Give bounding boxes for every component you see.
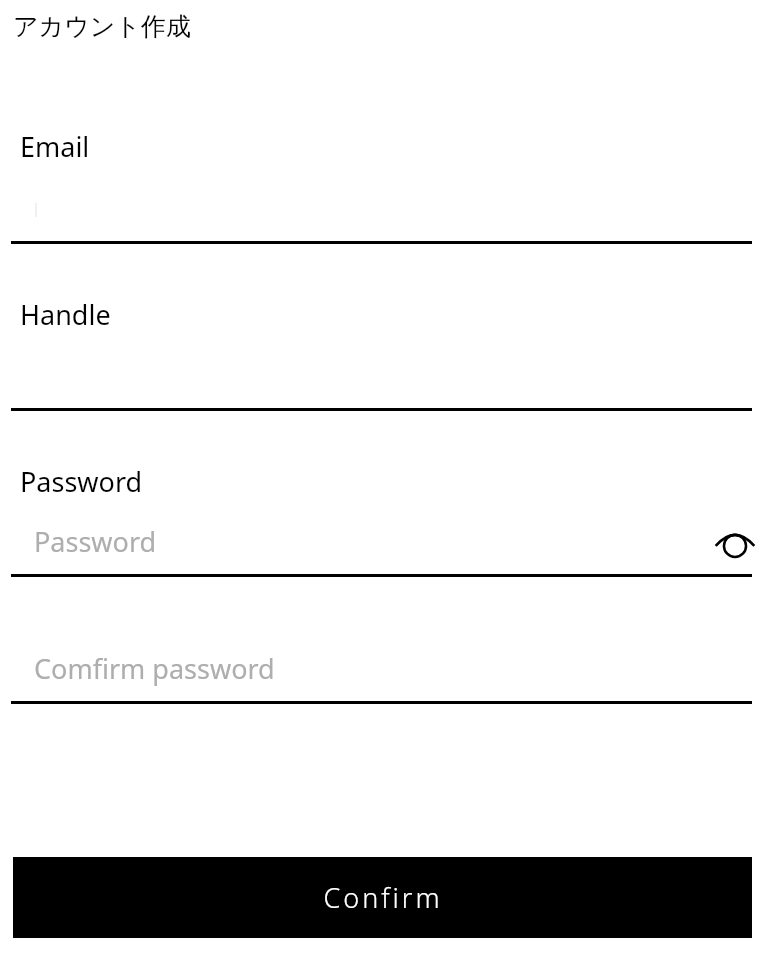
button[interactable] <box>0 592 772 704</box>
button[interactable]: Confirm <box>13 857 752 938</box>
staticText: Password <box>20 463 143 500</box>
staticText: Confirm <box>323 879 443 916</box>
staticText: Comfirm password <box>34 650 275 687</box>
staticText: Email <box>20 128 90 165</box>
button[interactable] <box>0 461 700 578</box>
staticText: Handle <box>20 296 111 333</box>
staticText: アカウント作成 <box>13 11 191 42</box>
button[interactable]: Show password <box>707 515 763 571</box>
button[interactable] <box>0 294 772 412</box>
staticText: Password <box>34 523 157 560</box>
button[interactable] <box>0 126 772 246</box>
